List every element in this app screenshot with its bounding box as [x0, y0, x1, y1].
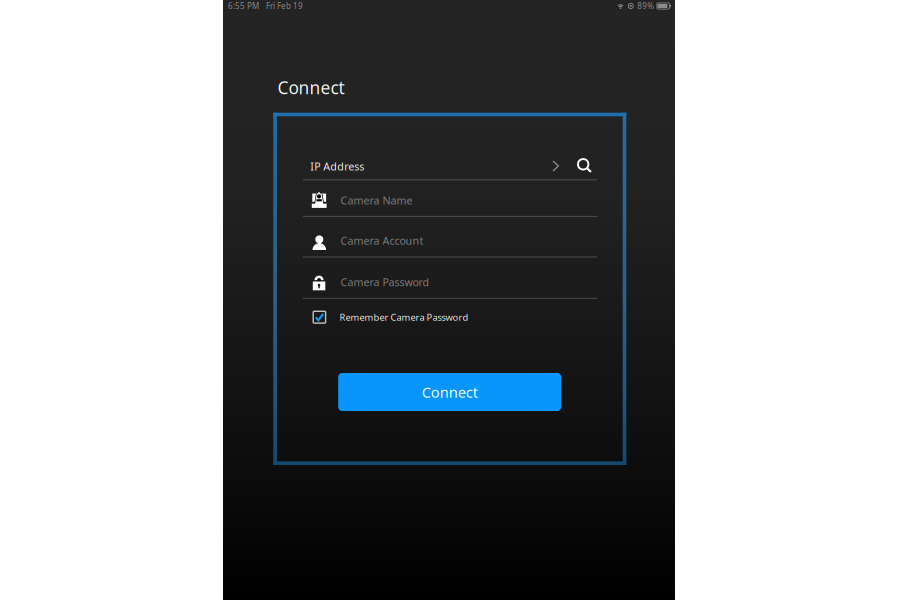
staticText: 6:55 PM: [228, 1, 259, 11]
staticText: Connect: [277, 76, 344, 99]
staticText: Camera Name: [340, 193, 412, 207]
button[interactable]: Connect: [338, 373, 561, 411]
button[interactable]: Choose IP address: [546, 156, 565, 176]
staticText: Camera Account: [340, 233, 423, 248]
button[interactable]: Search for cameras: [574, 155, 595, 176]
staticText: Fri Feb 19: [266, 1, 303, 11]
staticText: Connect: [422, 382, 478, 402]
staticText: 89%: [637, 1, 654, 11]
staticText: IP Address: [310, 159, 364, 173]
staticText: Camera Password: [340, 275, 429, 289]
button[interactable]: Remember Camera Password: [313, 307, 469, 327]
staticText: Remember Camera Password: [340, 311, 469, 323]
